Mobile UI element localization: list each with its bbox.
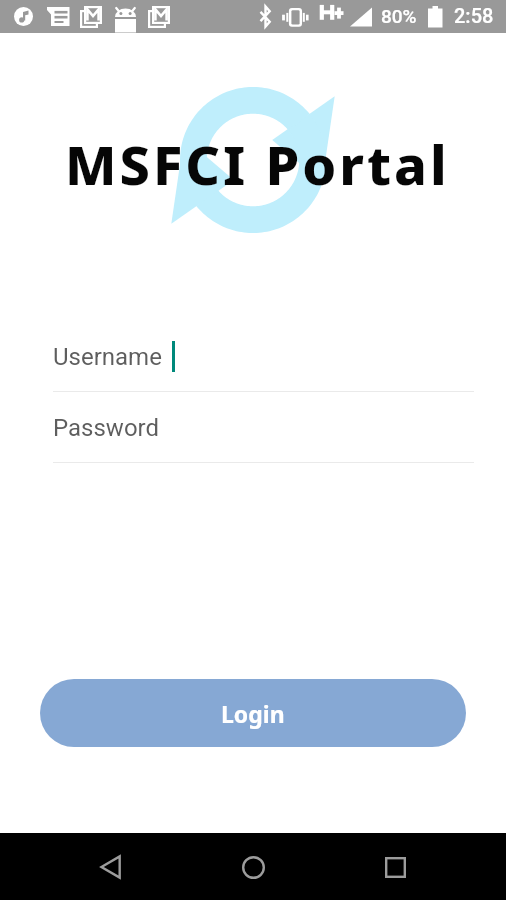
staticText: Login (221, 698, 285, 729)
staticText: MSFCI Portal (65, 127, 450, 201)
button[interactable]: Username (53, 341, 474, 392)
button[interactable]: Home (223, 837, 283, 897)
staticText: Username (53, 343, 162, 371)
staticText: Password (53, 414, 160, 442)
button[interactable]: Back (82, 837, 142, 897)
button[interactable]: Login (40, 679, 466, 747)
button[interactable]: Password (53, 414, 474, 463)
button[interactable]: Recent apps (365, 837, 425, 897)
staticText: 80% (381, 5, 417, 27)
staticText: 2:58 (454, 4, 494, 27)
